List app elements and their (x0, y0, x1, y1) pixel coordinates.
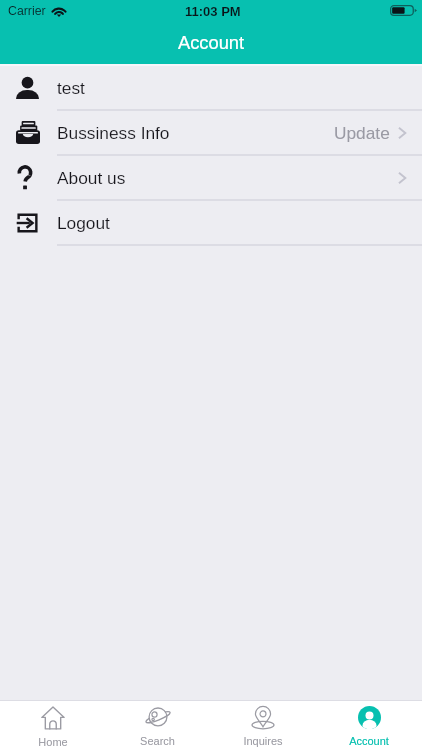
button[interactable]: Inquires (210, 701, 316, 750)
button[interactable]: test (0, 66, 422, 111)
staticText: About us (57, 168, 126, 187)
staticText: Account (349, 735, 389, 747)
staticText: Logout (57, 213, 110, 232)
button[interactable]: Account (316, 701, 422, 750)
staticText: test (57, 78, 85, 97)
staticText: 11:03 PM (185, 4, 241, 19)
staticText: Update (334, 123, 390, 142)
staticText: Home (38, 736, 68, 748)
staticText: Inquires (243, 735, 283, 747)
staticText: Carrier (8, 4, 46, 18)
button[interactable]: Bussiness Info (0, 111, 422, 156)
button[interactable]: Logout (0, 201, 422, 246)
button[interactable]: Search (105, 701, 210, 750)
button[interactable]: About us (0, 156, 422, 201)
staticText: Search (140, 735, 175, 747)
button[interactable]: Home (0, 701, 105, 750)
staticText: Account (178, 32, 245, 52)
staticText: Bussiness Info (57, 123, 170, 142)
